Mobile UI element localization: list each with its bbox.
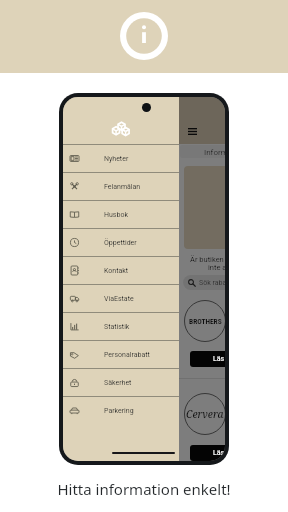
button[interactable]: Kontakt xyxy=(63,257,179,284)
staticText: Statistik xyxy=(104,323,130,331)
button[interactable]: Information xyxy=(180,145,225,158)
staticText: inte anges här xyxy=(208,263,225,272)
button[interactable]: Personalrabatt xyxy=(63,341,179,368)
staticText: Kontakt xyxy=(104,267,129,275)
staticText: Hitta information enkelt! xyxy=(0,479,288,499)
staticText: Nyheter xyxy=(104,155,129,163)
staticText: Sök rabatter xyxy=(199,279,225,287)
staticText: Felanmälan xyxy=(104,183,141,191)
button[interactable]: Läs mer xyxy=(190,445,225,461)
staticText: Information xyxy=(204,148,225,157)
button[interactable]: Open navigation menu xyxy=(184,123,200,139)
staticText: Cervera xyxy=(186,407,224,421)
button[interactable]: Öppettider xyxy=(63,229,179,256)
button[interactable]: Parkering xyxy=(63,397,179,424)
staticText: Öppettider xyxy=(104,239,137,247)
staticText: Är butiken öppen eller xyxy=(190,255,225,264)
staticText: Läs mer xyxy=(213,355,225,363)
button[interactable]: BROTHERS xyxy=(184,300,225,342)
staticText: Husbok xyxy=(104,211,128,219)
staticText: Parkering xyxy=(104,407,134,415)
staticText: Läs mer xyxy=(213,449,225,457)
button[interactable]: Information xyxy=(120,12,168,60)
button[interactable]: Läs mer xyxy=(190,351,225,367)
staticText: Personalrabatt xyxy=(104,351,150,359)
staticText: ViaEstate xyxy=(104,295,134,303)
button[interactable]: Felanmälan xyxy=(63,173,179,200)
staticText: BROTHERS xyxy=(189,317,222,326)
button[interactable]: Statistik xyxy=(63,313,179,340)
button[interactable]: Husbok xyxy=(63,201,179,228)
button[interactable]: Nyheter xyxy=(63,145,179,172)
button[interactable]: Sök rabatter xyxy=(183,275,225,290)
button[interactable]: Cervera xyxy=(184,393,225,435)
button[interactable]: ViaEstate xyxy=(63,285,179,312)
staticText: Säkerhet xyxy=(104,379,132,387)
button[interactable]: Säkerhet xyxy=(63,369,179,396)
